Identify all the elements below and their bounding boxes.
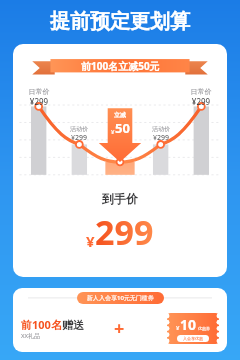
button[interactable]: 新人入会享10元无门槛券 <box>13 288 227 352</box>
staticText: 到手价 <box>102 191 138 206</box>
staticText: ¥299 <box>64 133 94 143</box>
button[interactable]: 领取10元优惠券 <box>167 313 219 344</box>
staticText: 活动价 <box>146 125 176 133</box>
staticText: 赠送 <box>62 318 84 332</box>
staticText: 50 <box>115 119 130 137</box>
staticText: ¥299 <box>146 133 176 143</box>
staticText: 入会享优惠 <box>183 336 203 341</box>
staticText: 299 <box>95 209 154 255</box>
staticText: 立减 <box>114 111 126 119</box>
staticText: 提前预定更划算 <box>50 9 190 34</box>
staticText: 日常价 <box>24 87 54 96</box>
staticText: ¥ <box>111 128 115 136</box>
staticText: 活动价 <box>64 125 94 133</box>
staticText: 前100名立减50元 <box>81 59 160 73</box>
staticText: ¥299 <box>24 96 54 107</box>
staticText: ¥ <box>176 324 180 332</box>
staticText: 前100名 <box>21 317 62 332</box>
staticText: 日常价 <box>186 87 216 96</box>
staticText: 优惠券 <box>198 326 210 331</box>
staticText: ¥ <box>86 231 95 251</box>
staticText: XX礼品 <box>21 332 41 340</box>
staticText: + <box>114 316 125 341</box>
staticText: ¥299 <box>186 96 216 107</box>
staticText: 新人入会享10元无门槛券 <box>87 294 154 302</box>
staticText: 10 <box>180 315 197 334</box>
